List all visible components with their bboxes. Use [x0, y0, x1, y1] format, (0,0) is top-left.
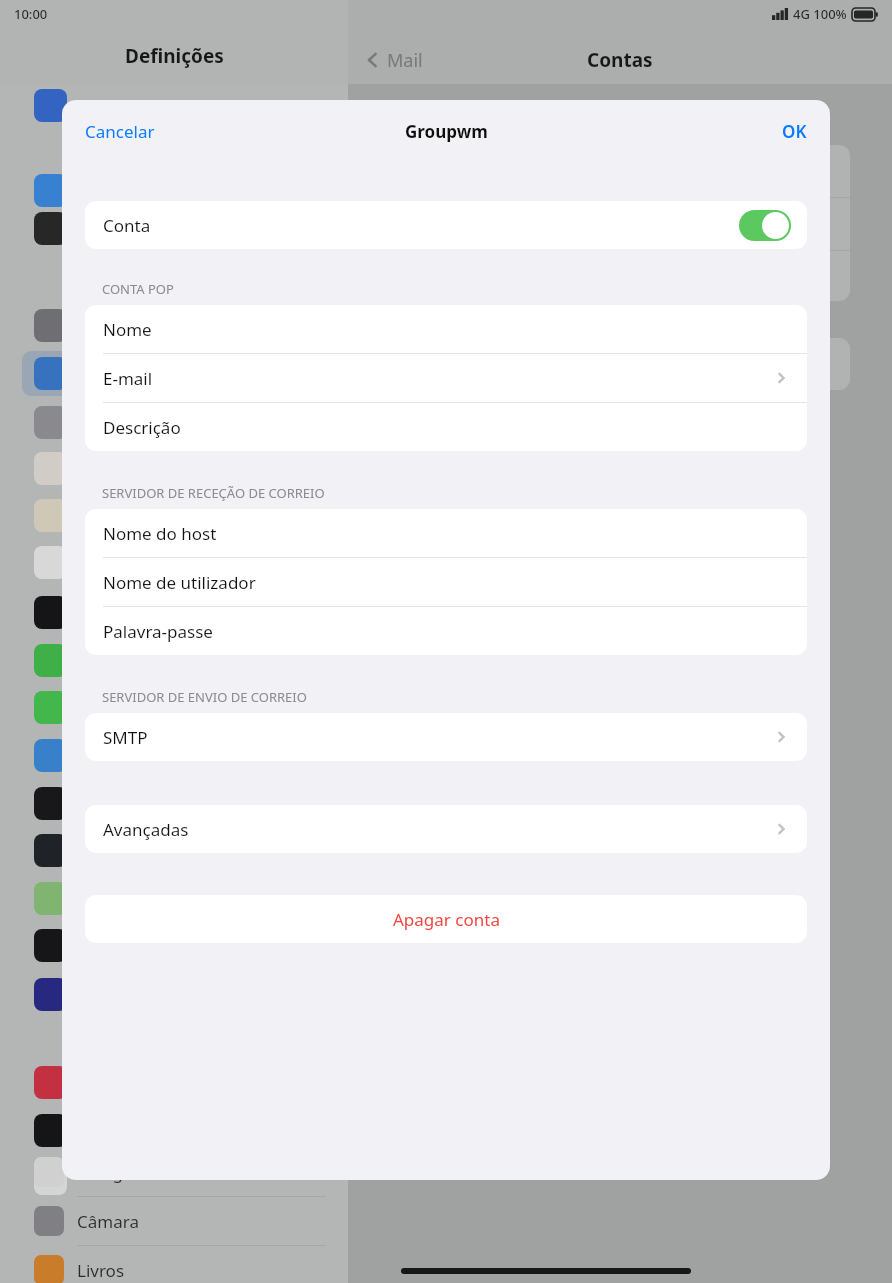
staticText: Palavra-passe: [103, 620, 213, 643]
staticText: Livros: [77, 1259, 125, 1282]
button[interactable]: Cancelar: [81, 116, 159, 147]
staticText: Câmara: [77, 1210, 139, 1233]
button[interactable]: Câmara: [0, 1197, 348, 1245]
staticText: Definições: [125, 43, 224, 69]
staticText: Avançadas: [103, 818, 189, 841]
other: Conta ativada: [739, 210, 791, 241]
button[interactable]: Conta: [85, 201, 807, 249]
button[interactable]: Nome do host: [85, 509, 807, 557]
staticText: Nome: [103, 318, 152, 341]
staticText: Descrição: [103, 416, 181, 439]
button[interactable]: Palavra-passe: [85, 607, 807, 655]
staticText: Fotografias: [77, 1161, 168, 1184]
button[interactable]: OK: [778, 116, 811, 147]
button[interactable]: Apagar conta: [85, 895, 807, 943]
staticText: Mail: [387, 48, 423, 73]
staticText: 10:00: [14, 5, 48, 23]
staticText: CONTA POP: [102, 280, 174, 298]
staticText: SERVIDOR DE RECEÇÃO DE CORREIO: [102, 484, 325, 502]
staticText: E-mail: [103, 367, 153, 390]
button[interactable]: SMTP: [85, 713, 807, 761]
button[interactable]: Nome: [85, 305, 807, 353]
staticText: Groupwm: [405, 120, 488, 143]
staticText: Contas: [587, 47, 653, 73]
button[interactable]: Fotografias: [0, 1148, 348, 1196]
button[interactable]: Nome de utilizador: [85, 558, 807, 606]
staticText: OK: [782, 120, 807, 143]
button[interactable]: E-mail: [85, 354, 807, 402]
staticText: Nome de utilizador: [103, 571, 256, 594]
staticText: SMTP: [103, 726, 148, 749]
staticText: Nome do host: [103, 522, 217, 545]
staticText: Conta: [103, 214, 151, 237]
button[interactable]: Avançadas: [85, 805, 807, 853]
button[interactable]: Livros: [0, 1246, 348, 1283]
staticText: SERVIDOR DE ENVIO DE CORREIO: [102, 688, 307, 706]
staticText: 4G 100%: [793, 5, 847, 23]
staticText: Cancelar: [85, 120, 155, 143]
staticText: Apagar conta: [393, 908, 500, 931]
button[interactable]: Descrição: [85, 403, 807, 451]
